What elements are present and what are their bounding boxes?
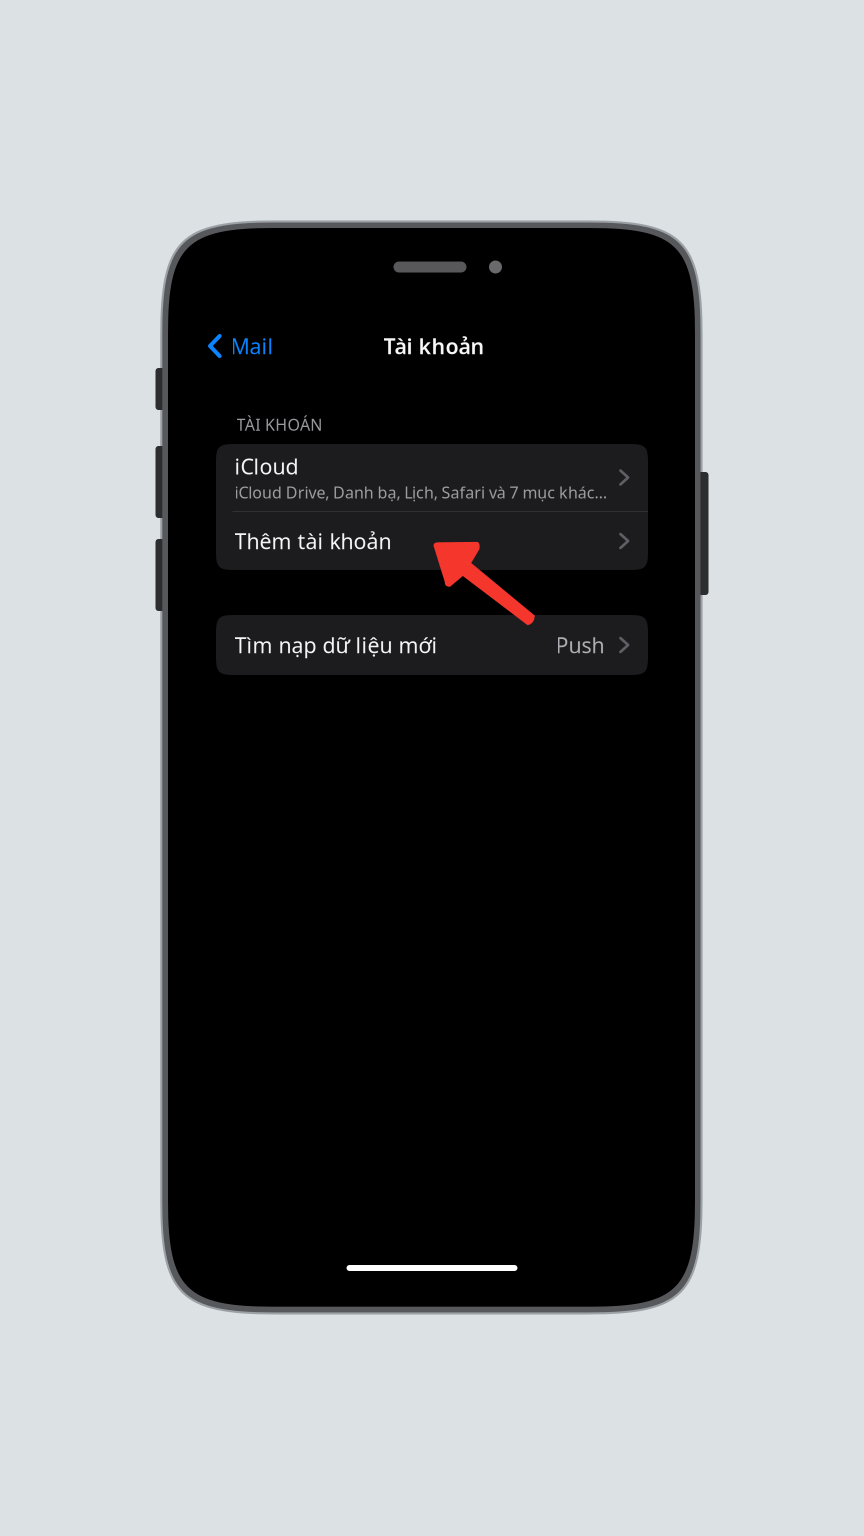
- button[interactable]: Thêm tài khoản: [216, 512, 648, 570]
- button[interactable]: Mail: [168, 322, 292, 370]
- staticText: Tài khoản: [383, 332, 484, 360]
- staticText: iCloud: [234, 452, 298, 480]
- staticText: Push: [556, 631, 605, 659]
- staticText: Tìm nạp dữ liệu mới: [234, 631, 437, 659]
- button[interactable]: Tìm nạp dữ liệu mới: [216, 615, 648, 675]
- staticText: TÀI KHOẢN: [236, 414, 322, 435]
- staticText: iCloud Drive, Danh bạ, Lịch, Safari và 7…: [234, 482, 608, 503]
- button[interactable]: iCloud: [216, 444, 648, 511]
- staticText: Mail: [231, 332, 274, 360]
- staticText: Thêm tài khoản: [234, 527, 391, 555]
